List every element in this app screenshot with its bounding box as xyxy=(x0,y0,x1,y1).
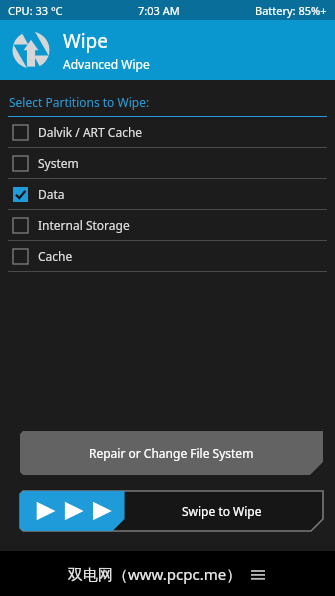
other: TWRP logo xyxy=(9,28,53,72)
staticText: Internal Storage xyxy=(38,217,130,233)
staticText: Repair or Change File System xyxy=(89,445,254,461)
staticText: Swipe to Wipe xyxy=(182,503,262,519)
staticText: Select Partitions to Wipe: xyxy=(9,94,150,110)
staticText: CPU: 33 °C xyxy=(8,3,63,18)
button[interactable]: Dalvik / ART Cache xyxy=(0,117,335,147)
button[interactable]: Swipe to Wipe xyxy=(20,491,323,531)
staticText: Dalvik / ART Cache xyxy=(38,124,143,140)
staticText: 双电网（www.pcpc.me） xyxy=(68,564,242,584)
staticText: Wipe xyxy=(63,28,108,54)
button[interactable]: TWRP logo xyxy=(0,20,335,80)
staticText: Data xyxy=(38,186,65,202)
button[interactable]: Data xyxy=(0,179,335,209)
staticText: System xyxy=(38,155,79,171)
button[interactable]: Cache xyxy=(0,241,335,271)
button[interactable]: System xyxy=(0,148,335,178)
staticText: Cache xyxy=(38,248,73,264)
button[interactable]: Repair or Change File System xyxy=(20,431,323,475)
staticText: Battery: 85%+ xyxy=(255,3,327,18)
staticText: 7:03 AM xyxy=(138,3,180,18)
button[interactable]: Internal Storage xyxy=(0,210,335,240)
staticText: Advanced Wipe xyxy=(63,56,150,72)
button[interactable]: Menu xyxy=(248,564,268,584)
